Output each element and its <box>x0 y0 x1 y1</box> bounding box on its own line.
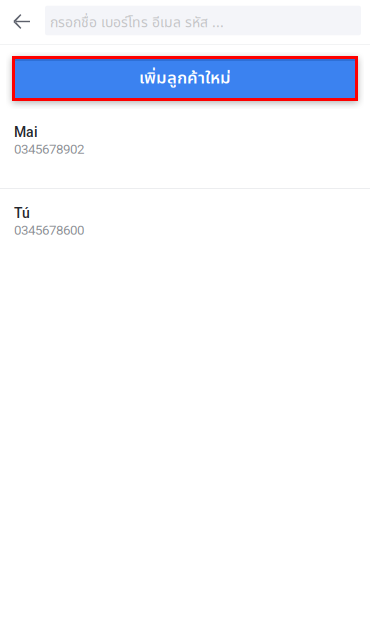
staticText: 0345678902 <box>14 141 84 157</box>
button[interactable]: เพิ่มลูกค้าใหม่ <box>12 56 358 101</box>
staticText: Mai <box>14 124 38 140</box>
staticText: Tú <box>14 205 30 221</box>
staticText: 0345678600 <box>14 222 84 238</box>
button[interactable]: Tú <box>0 191 370 252</box>
button[interactable]: Back <box>0 0 45 44</box>
staticText: เพิ่มลูกค้าใหม่ <box>139 66 231 91</box>
staticText: กรอกชื่อ เบอร์โทร อีเมล รหัส ... <box>50 12 224 34</box>
button[interactable]: Mai <box>0 110 370 171</box>
button[interactable]: กรอกชื่อ เบอร์โทร อีเมล รหัส ... <box>45 7 361 37</box>
